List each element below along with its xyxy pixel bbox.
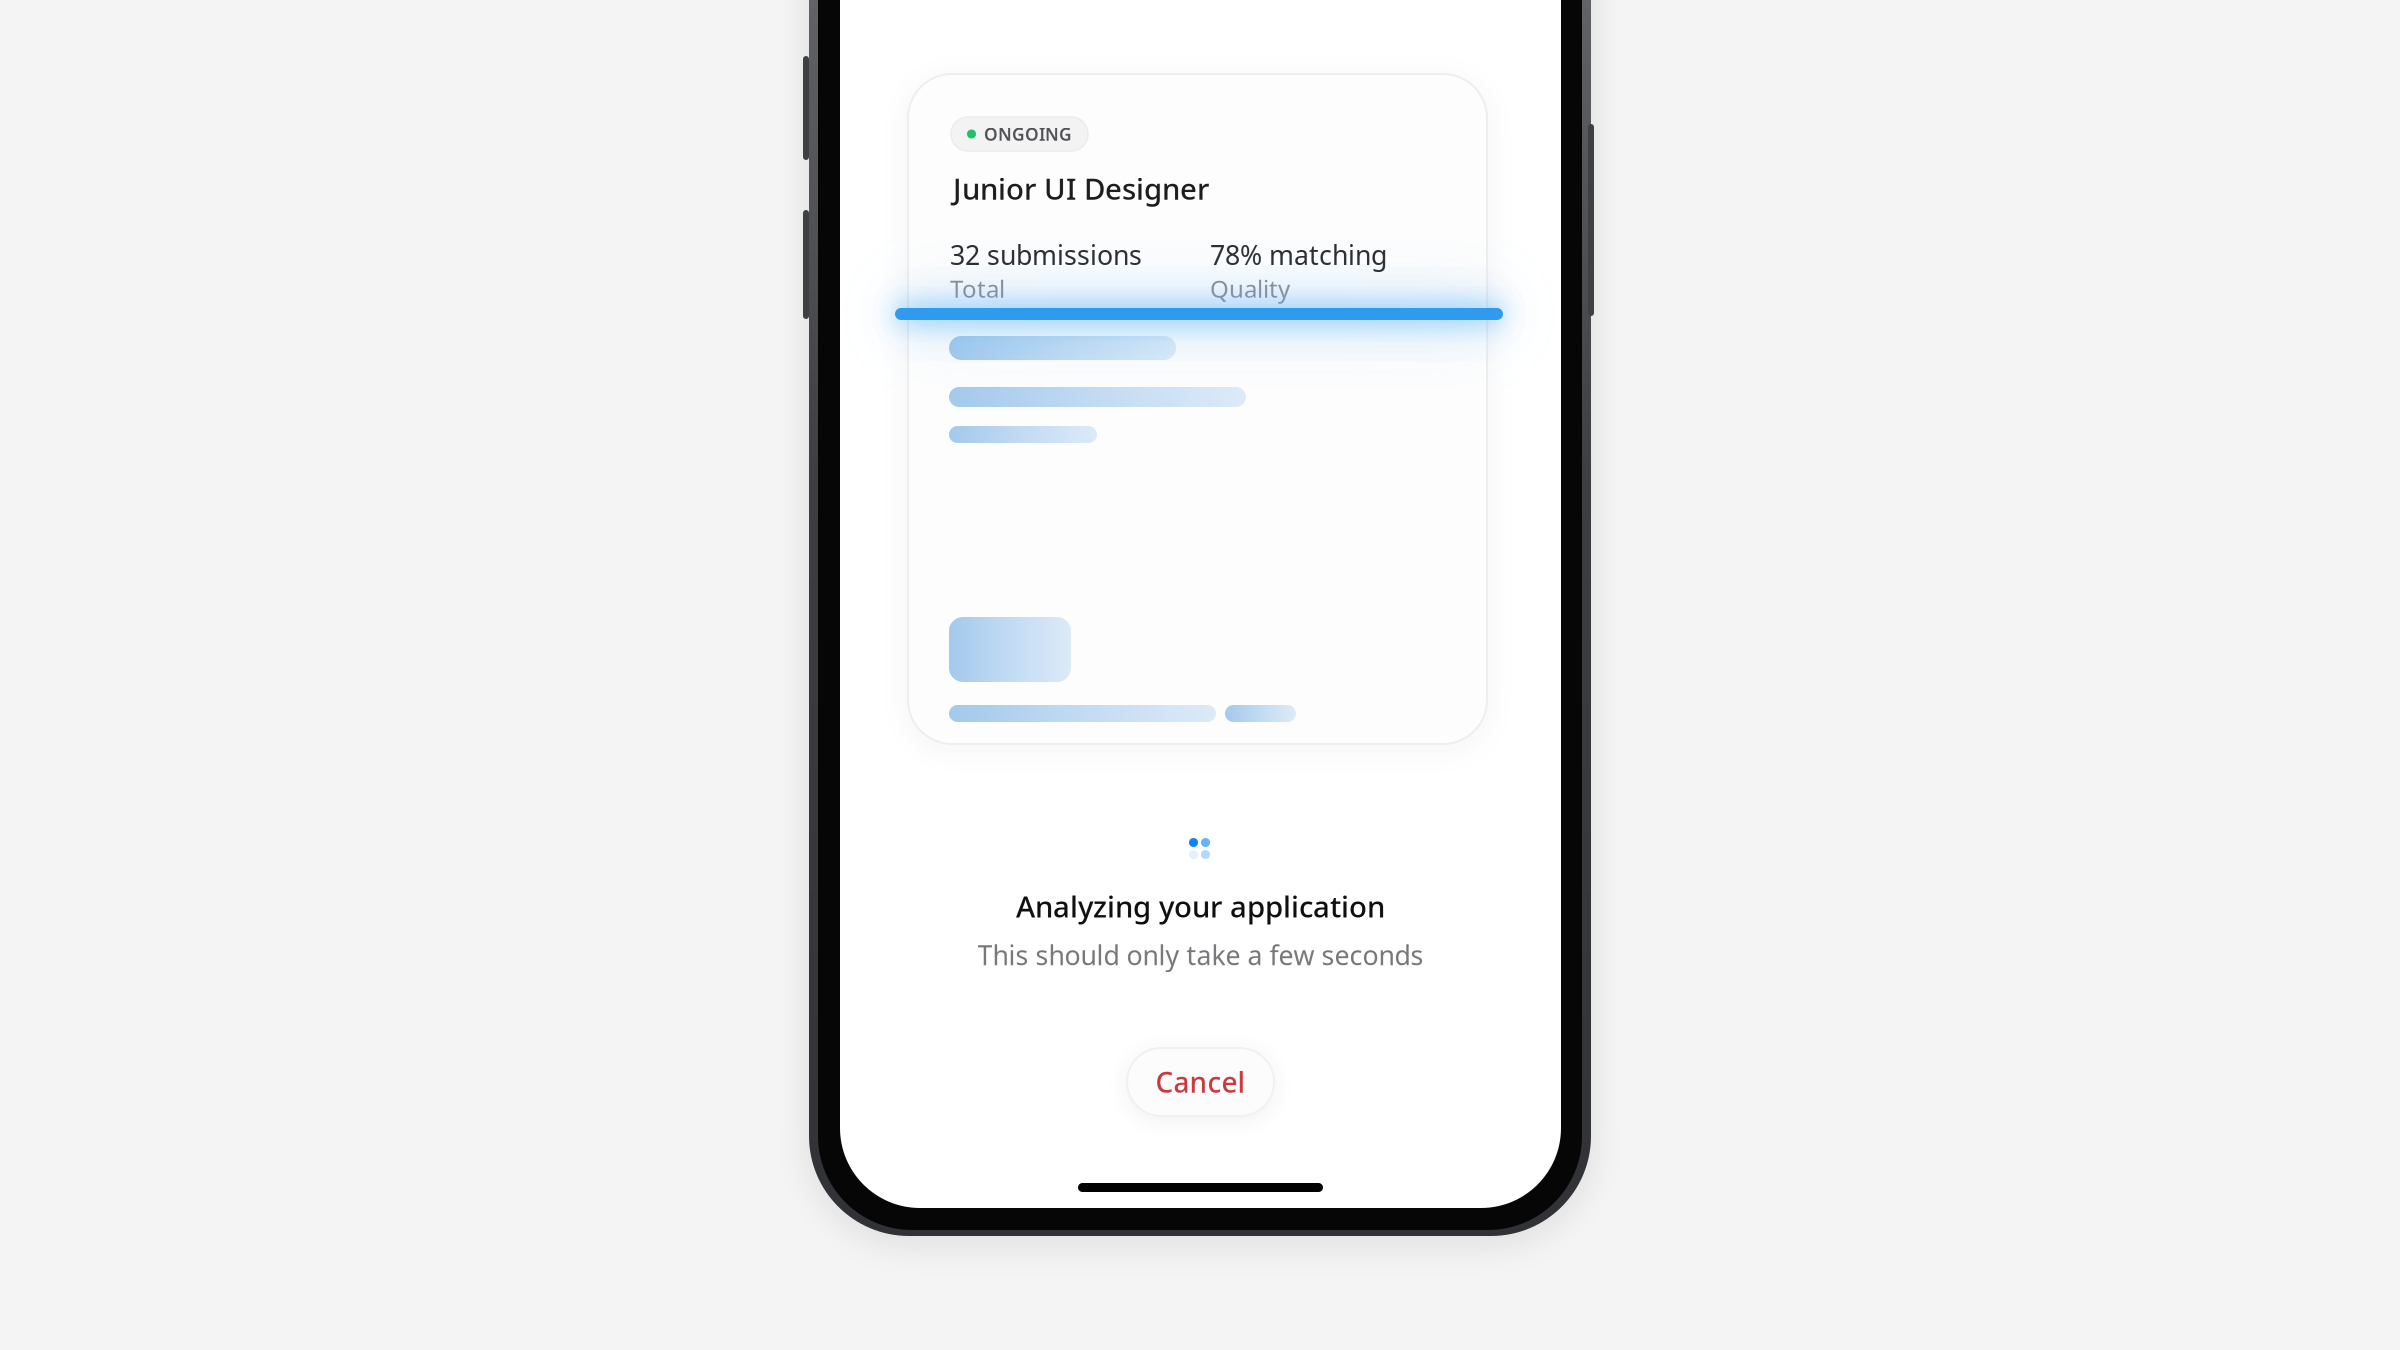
staticText: Total: [950, 272, 1005, 304]
staticText: Analyzing your application: [1016, 886, 1385, 925]
staticText: Cancel: [1155, 1063, 1245, 1101]
staticText: 78% matching: [1210, 237, 1387, 272]
staticText: 32 submissions: [950, 237, 1142, 272]
button[interactable]: Cancel: [1127, 1048, 1274, 1116]
staticText: Junior UI Designer: [953, 169, 1209, 208]
staticText: This should only take a few seconds: [977, 937, 1423, 973]
staticText: ONGOING: [984, 122, 1072, 145]
staticText: Quality: [1210, 272, 1290, 304]
